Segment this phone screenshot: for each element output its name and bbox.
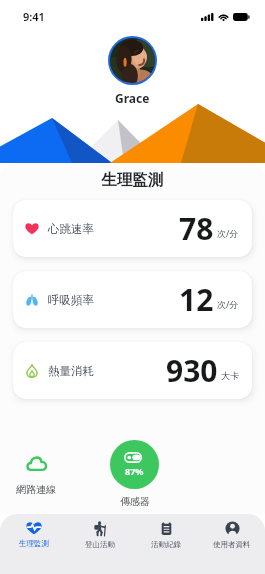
button[interactable]: 87% <box>110 440 159 508</box>
button[interactable]: 活動紀錄 <box>133 521 199 574</box>
staticText: 930 <box>166 350 218 391</box>
button[interactable]: 呼吸頻率 <box>13 271 252 328</box>
staticText: 12 <box>179 279 214 320</box>
button[interactable]: Profile photo of Grace <box>110 38 155 83</box>
button[interactable]: 熱量消耗 <box>13 342 252 399</box>
button[interactable]: 心跳速率 <box>13 200 252 257</box>
staticText: 78 <box>179 208 214 249</box>
staticText: 使用者資料 <box>213 540 251 549</box>
staticText: 次/分 <box>217 227 239 239</box>
staticText: 次/分 <box>217 298 239 310</box>
staticText: 大卡 <box>221 370 239 381</box>
staticText: 生理監測 <box>19 539 49 548</box>
staticText: 網路連線 <box>16 483 56 496</box>
button[interactable]: 使用者資料 <box>199 521 265 574</box>
staticText: 心跳速率 <box>48 222 94 236</box>
staticText: 活動紀錄 <box>151 540 181 549</box>
button[interactable]: 生理監測 <box>0 521 67 574</box>
button[interactable]: 網路連線 <box>12 454 60 496</box>
button[interactable]: 登山活動 <box>67 521 133 574</box>
staticText: 傳感器 <box>120 495 150 508</box>
staticText: 生理監測 <box>0 170 265 190</box>
staticText: 呼吸頻率 <box>48 293 94 307</box>
staticText: Grace <box>115 90 150 106</box>
staticText: 熱量消耗 <box>48 364 94 378</box>
staticText: 9:41 <box>23 9 45 24</box>
staticText: 登山活動 <box>85 540 115 549</box>
staticText: 87% <box>125 465 144 477</box>
